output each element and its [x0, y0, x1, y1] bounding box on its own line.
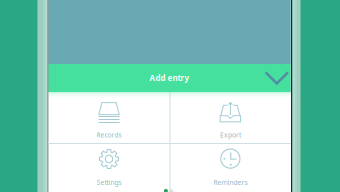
staticText: Reminders [213, 178, 247, 187]
button[interactable]: Settings [48, 142, 169, 192]
button[interactable]: Reminders [170, 142, 291, 192]
staticText: Settings [96, 178, 121, 187]
staticText: Add entry [149, 73, 189, 83]
staticText: Records [96, 130, 121, 139]
button[interactable]: Add entry [48, 64, 290, 92]
button[interactable]: Export [170, 92, 291, 143]
staticText: Export [220, 130, 241, 139]
button[interactable]: Records [48, 92, 169, 143]
